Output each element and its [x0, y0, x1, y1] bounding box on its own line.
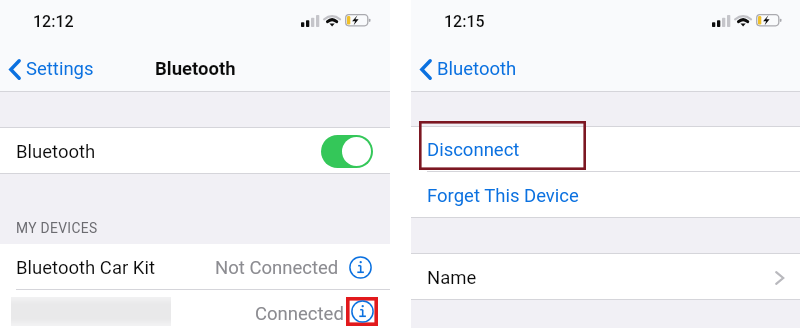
button[interactable]: Device info [346, 297, 378, 326]
button[interactable]: Bluetooth [0, 128, 390, 173]
staticText: Bluetooth [155, 58, 236, 80]
staticText: Not Connected [215, 257, 339, 279]
button[interactable]: Connected [0, 290, 390, 328]
staticText: Settings [26, 58, 94, 80]
button[interactable]: Disconnect [411, 127, 800, 171]
staticText: Name [427, 267, 477, 289]
button[interactable]: Name [411, 254, 800, 299]
staticText: Bluetooth [16, 141, 96, 163]
button[interactable]: Forget This Device [411, 172, 800, 217]
staticText: Bluetooth Car Kit [16, 257, 155, 279]
button[interactable]: Settings [9, 58, 94, 80]
button[interactable]: Bluetooth Car Kit [0, 244, 390, 289]
staticText: 12:12 [33, 12, 74, 31]
button[interactable]: Bluetooth on [321, 135, 373, 168]
staticText: Forget This Device [427, 185, 579, 207]
staticText: Disconnect [427, 139, 520, 161]
other: Open [775, 271, 785, 285]
staticText: 12:15 [444, 12, 485, 31]
staticText: Bluetooth [437, 58, 517, 80]
button[interactable]: Bluetooth [420, 58, 517, 80]
staticText: Connected [255, 303, 344, 325]
staticText: MY DEVICES [16, 220, 98, 236]
